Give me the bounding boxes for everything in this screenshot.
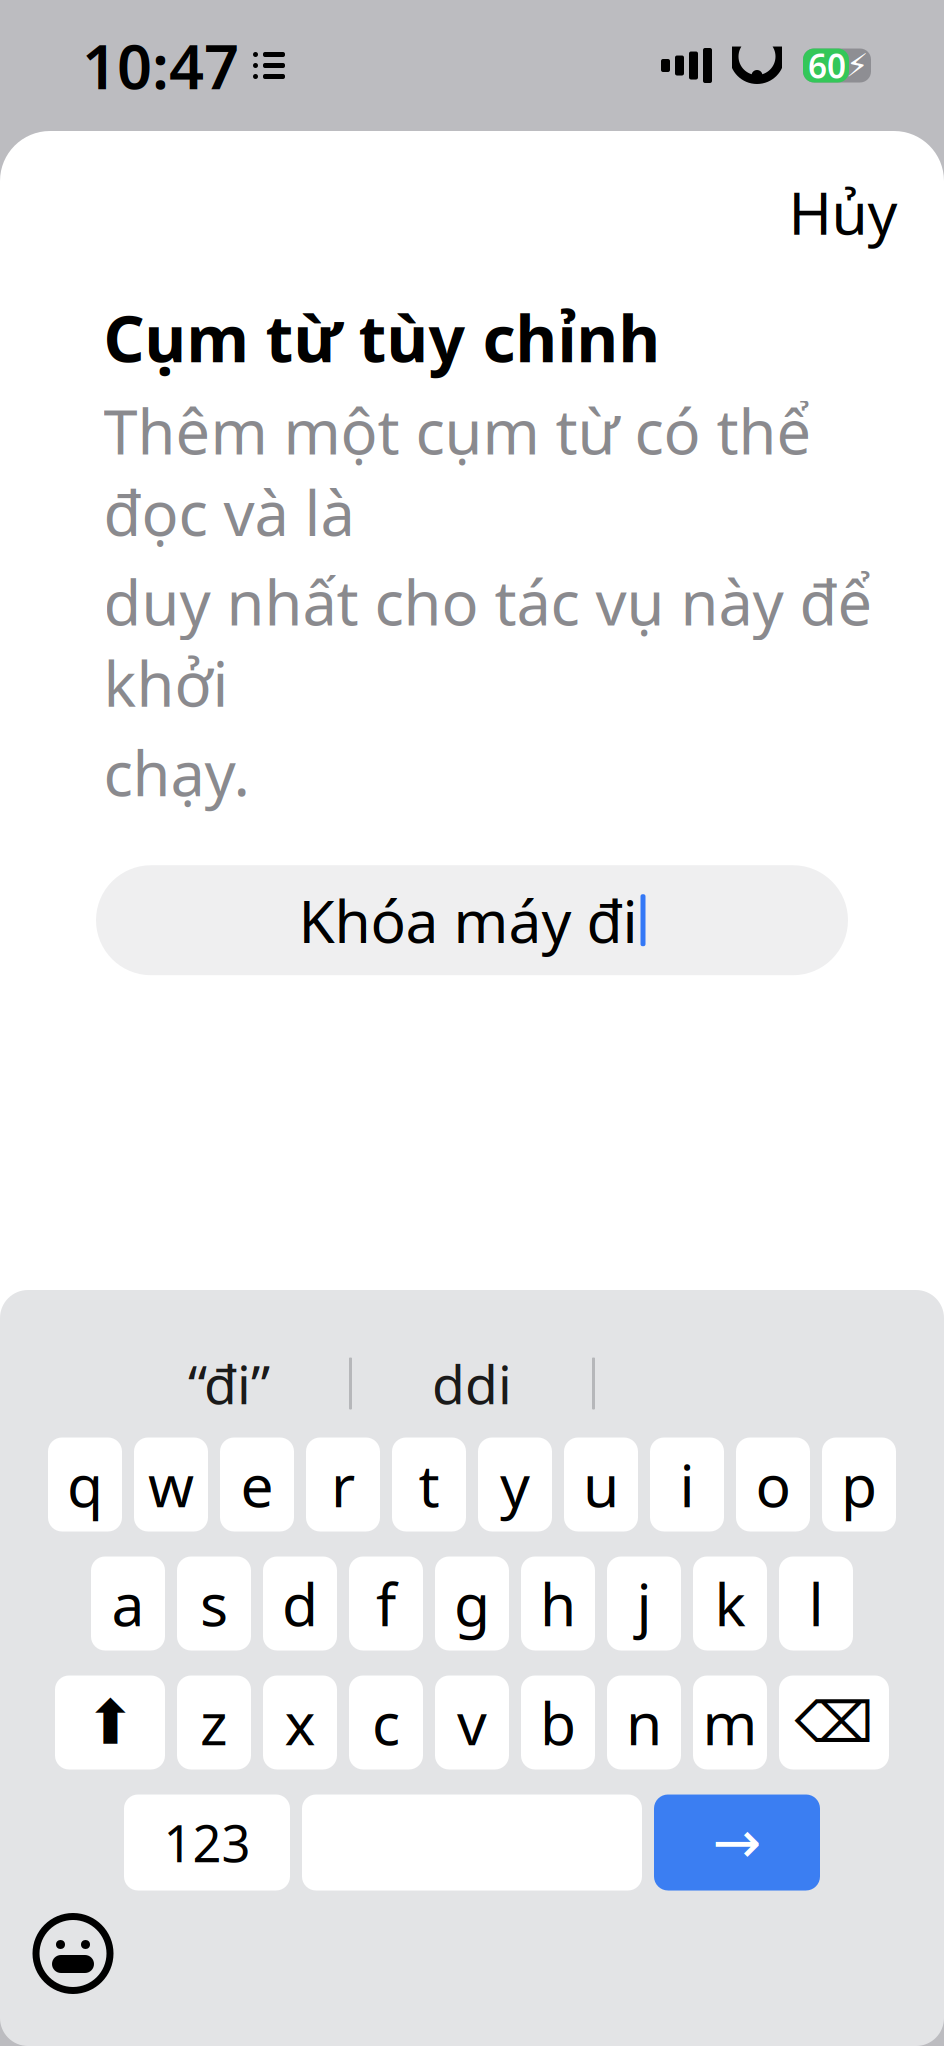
button[interactable]: s xyxy=(177,1556,251,1650)
button[interactable]: Return xyxy=(654,1794,820,1890)
button[interactable]: Hủy xyxy=(784,153,902,271)
staticText: z xyxy=(200,1683,228,1761)
button[interactable]: k xyxy=(693,1556,767,1650)
button[interactable]: Delete xyxy=(779,1675,889,1769)
staticText: y xyxy=(500,1445,530,1523)
button[interactable]: d xyxy=(263,1556,337,1650)
staticText: m xyxy=(702,1683,757,1761)
staticText: x xyxy=(284,1683,315,1761)
button[interactable]: w xyxy=(134,1437,208,1531)
staticText: 60 xyxy=(808,43,846,88)
button[interactable]: z xyxy=(177,1675,251,1769)
staticText: r xyxy=(331,1445,355,1523)
staticText: c xyxy=(372,1683,400,1761)
button[interactable]: a xyxy=(91,1556,165,1650)
button[interactable]: v xyxy=(435,1675,509,1769)
staticText: h xyxy=(540,1564,576,1642)
button[interactable]: “đi” xyxy=(109,1337,349,1429)
staticText: ddi xyxy=(432,1348,512,1419)
staticText: ⬆ xyxy=(84,1688,135,1757)
staticText: f xyxy=(376,1564,396,1642)
button[interactable]: t xyxy=(392,1437,466,1531)
staticText: ⚡︎ xyxy=(846,47,868,84)
button[interactable]: n xyxy=(607,1675,681,1769)
button[interactable]: Emoji xyxy=(30,1910,116,1996)
button[interactable]: q xyxy=(48,1437,122,1531)
staticText: → xyxy=(712,1809,761,1876)
button[interactable]: i xyxy=(650,1437,724,1531)
staticText: “đi” xyxy=(188,1348,270,1419)
staticText: duy nhất cho tác vụ này để khởi xyxy=(103,561,872,724)
staticText: s xyxy=(200,1564,228,1642)
staticText: Khóa máy đi xyxy=(298,881,637,959)
button[interactable]: r xyxy=(306,1437,380,1531)
staticText: e xyxy=(240,1445,273,1523)
staticText: Hủy xyxy=(788,173,897,251)
button[interactable]: m xyxy=(693,1675,767,1769)
button[interactable]: o xyxy=(736,1437,810,1531)
staticText: j xyxy=(636,1564,651,1642)
staticText: w xyxy=(148,1445,194,1523)
staticText: b xyxy=(540,1683,576,1761)
staticText: u xyxy=(583,1445,619,1523)
button[interactable]: p xyxy=(822,1437,896,1531)
button[interactable]: j xyxy=(607,1556,681,1650)
staticText: o xyxy=(755,1445,790,1523)
button[interactable]: g xyxy=(435,1556,509,1650)
staticText: p xyxy=(841,1445,877,1523)
button[interactable]: x xyxy=(263,1675,337,1769)
staticText: Thêm một cụm từ có thể đọc và là xyxy=(103,390,811,553)
button[interactable]: Khóa máy đi xyxy=(96,865,848,975)
staticText: g xyxy=(454,1564,490,1642)
staticText: i xyxy=(679,1445,694,1523)
staticText: 123 xyxy=(163,1809,250,1876)
staticText: 10:47 xyxy=(82,25,239,106)
staticText: ⌫ xyxy=(794,1691,873,1754)
staticText: Cụm từ tùy chỉnh xyxy=(103,295,660,380)
button[interactable]: h xyxy=(521,1556,595,1650)
staticText: a xyxy=(111,1564,144,1642)
button[interactable]: b xyxy=(521,1675,595,1769)
staticText: k xyxy=(714,1564,745,1642)
button[interactable]: ddi xyxy=(352,1337,592,1429)
staticText: q xyxy=(67,1445,103,1523)
staticText: v xyxy=(457,1683,487,1761)
staticText: chạy. xyxy=(103,732,249,813)
button[interactable]: l xyxy=(779,1556,853,1650)
button[interactable]: u xyxy=(564,1437,638,1531)
staticText: t xyxy=(418,1445,439,1523)
button[interactable]: e xyxy=(220,1437,294,1531)
button[interactable]: f xyxy=(349,1556,423,1650)
button[interactable]: Shift xyxy=(55,1675,165,1769)
button[interactable]: c xyxy=(349,1675,423,1769)
button[interactable]: y xyxy=(478,1437,552,1531)
staticText: d xyxy=(282,1564,318,1642)
staticText: l xyxy=(808,1564,823,1642)
button[interactable]: 123 xyxy=(124,1794,290,1890)
staticText: n xyxy=(626,1683,662,1761)
